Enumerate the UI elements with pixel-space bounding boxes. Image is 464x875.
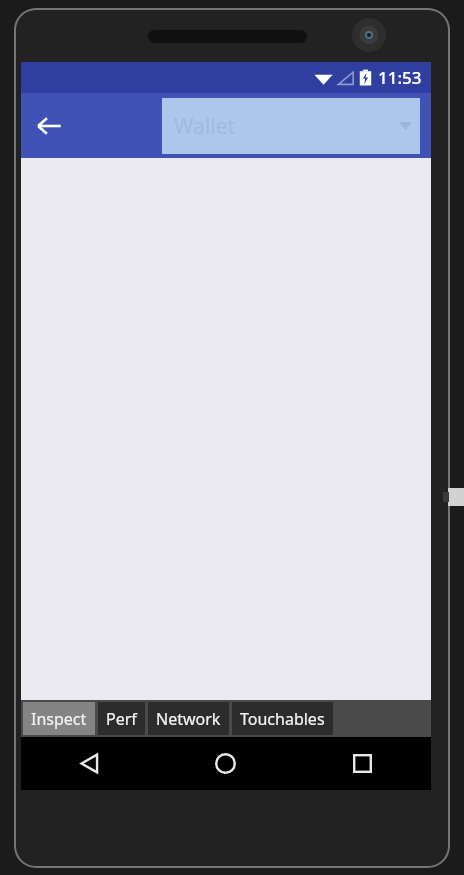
staticText: Wallet: [174, 112, 236, 141]
button[interactable]: Home: [157, 737, 294, 790]
button[interactable]: Touchables: [232, 702, 333, 735]
button[interactable]: Back: [21, 737, 157, 790]
button[interactable]: Back: [21, 98, 77, 154]
staticText: Touchables: [240, 708, 325, 730]
button[interactable]: Network: [148, 702, 229, 735]
staticText: Inspect: [31, 708, 87, 730]
staticText: 11:53: [378, 66, 422, 89]
button[interactable]: Inspect: [23, 702, 95, 735]
button[interactable]: Recent apps: [294, 737, 431, 790]
staticText: Network: [156, 708, 221, 730]
staticText: Perf: [106, 708, 137, 730]
button[interactable]: Perf: [98, 702, 145, 735]
